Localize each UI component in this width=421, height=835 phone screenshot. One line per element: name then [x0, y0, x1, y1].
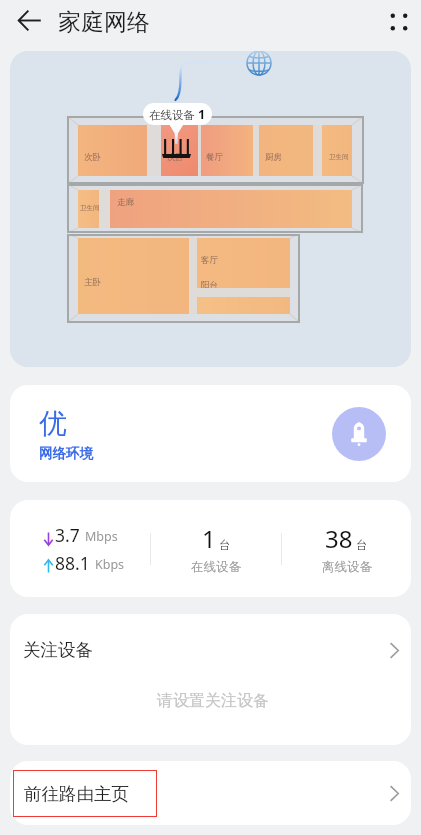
- button[interactable]: 3.7: [10, 500, 150, 597]
- staticText: 优: [39, 406, 67, 441]
- button[interactable]: 前往路由主页: [10, 761, 411, 825]
- button[interactable]: Internet: [246, 51, 272, 76]
- staticText: 餐厅: [206, 152, 223, 163]
- staticText: 关注设备: [23, 639, 93, 661]
- button[interactable]: 关注设备: [10, 614, 411, 686]
- button[interactable]: Back: [9, 0, 49, 40]
- staticText: 请设置关注设备: [157, 691, 269, 711]
- staticText: 在线设备: [191, 559, 241, 575]
- staticText: 家庭网络: [58, 8, 150, 37]
- staticText: 1: [202, 522, 216, 555]
- staticText: 3.7: [55, 523, 80, 547]
- staticText: 台: [219, 538, 231, 552]
- button[interactable]: More options: [379, 2, 419, 42]
- staticText: 卫生间: [329, 153, 349, 161]
- staticText: 88.1: [55, 551, 90, 575]
- staticText: 1: [198, 106, 206, 123]
- staticText: 网络环境: [39, 445, 93, 462]
- button[interactable]: 在线设备: [143, 103, 212, 125]
- staticText: 次卧: [167, 152, 184, 163]
- staticText: 离线设备: [322, 559, 372, 575]
- button[interactable]: 1: [151, 500, 281, 597]
- button[interactable]: 优: [10, 385, 411, 482]
- staticText: Kbps: [95, 556, 125, 573]
- staticText: 主卧: [84, 277, 101, 288]
- staticText: Mbps: [85, 528, 118, 545]
- staticText: 阳台: [201, 280, 218, 291]
- staticText: 客厅: [201, 255, 218, 266]
- staticText: 次卧: [84, 152, 101, 163]
- button[interactable]: Boost: [332, 407, 386, 461]
- button[interactable]: 次卧: [10, 51, 411, 367]
- staticText: 在线设备: [149, 108, 195, 122]
- staticText: 前往路由主页: [24, 783, 129, 805]
- staticText: 走廊: [117, 197, 134, 208]
- button[interactable]: 38: [282, 500, 411, 597]
- staticText: 台: [356, 538, 368, 552]
- staticText: 卫生间: [80, 204, 100, 212]
- staticText: 38: [325, 522, 353, 555]
- staticText: 厨房: [265, 152, 282, 163]
